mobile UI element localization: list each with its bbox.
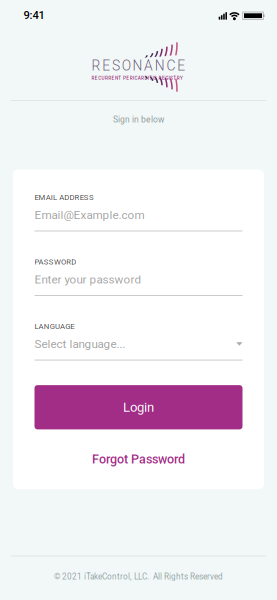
staticText: Login bbox=[123, 400, 154, 415]
staticText: Forgot Password bbox=[92, 452, 185, 467]
staticText: LANGUAGE bbox=[34, 322, 74, 331]
staticText: RECURRENT PERICARDITIS REGISTRY bbox=[91, 75, 183, 81]
staticText: © 2021 iTakeControl, LLC. All Rights Res… bbox=[54, 572, 223, 581]
staticText: Select language... bbox=[34, 337, 125, 351]
staticText: RESONANCE bbox=[91, 58, 185, 74]
staticText: PASSWORD bbox=[34, 257, 76, 266]
staticText: Email@Example.com bbox=[34, 208, 144, 222]
staticText: Sign in below bbox=[113, 115, 164, 125]
staticText: Enter your password bbox=[34, 273, 141, 286]
staticText: EMAIL ADDRESS bbox=[34, 193, 94, 202]
button[interactable]: Login bbox=[34, 385, 242, 429]
button[interactable]: Forgot Password bbox=[34, 452, 242, 467]
staticText: 9:41 bbox=[23, 8, 44, 22]
